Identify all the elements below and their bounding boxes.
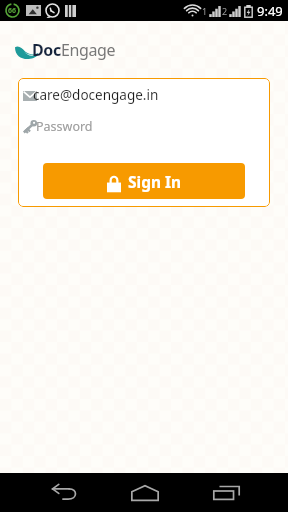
button[interactable]: care@docengage.in [18, 78, 270, 111]
staticText: Sign In [128, 171, 182, 192]
staticText: Password [36, 118, 93, 135]
staticText: care@docengage.in [33, 86, 159, 104]
staticText: 1 [202, 5, 208, 17]
button[interactable]: Password [18, 111, 270, 141]
staticText: Engage [61, 39, 116, 61]
button[interactable]: Home [112, 473, 176, 512]
staticText: 66 [8, 6, 17, 16]
staticText: Doc [32, 39, 61, 61]
button[interactable]: Sign In [43, 163, 245, 199]
button[interactable]: Recents [200, 473, 264, 512]
button[interactable]: Back [24, 473, 88, 512]
staticText: 2 [222, 5, 228, 17]
staticText: 9:49 [257, 2, 283, 20]
